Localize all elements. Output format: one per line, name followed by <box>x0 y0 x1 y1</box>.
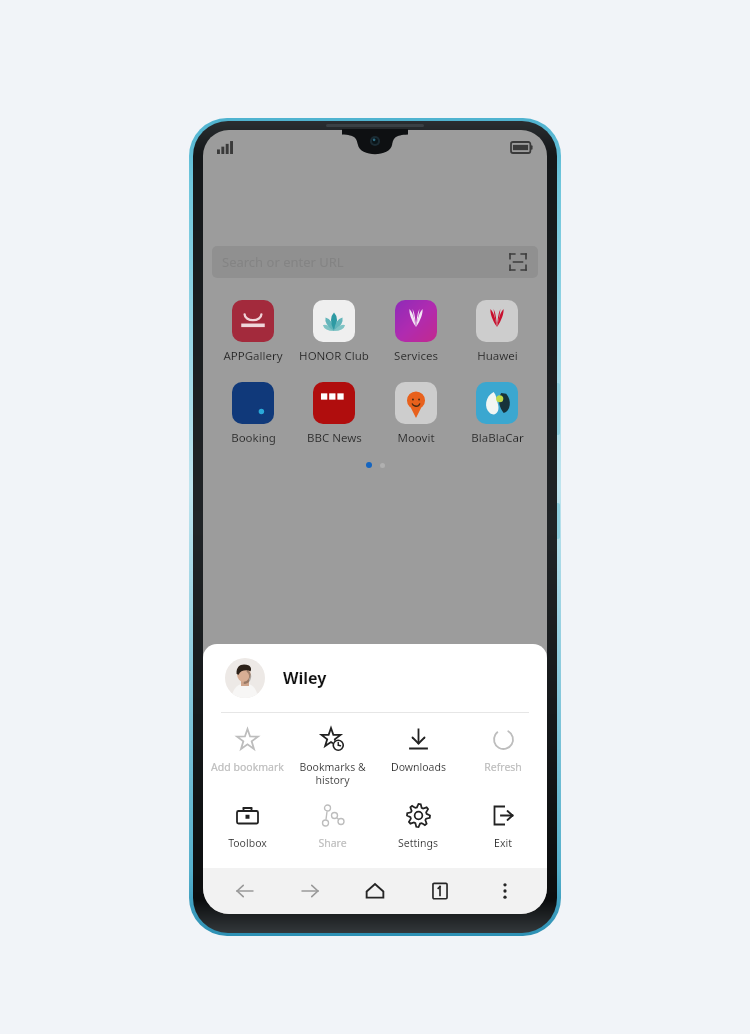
button[interactable]: Add bookmark <box>206 725 288 776</box>
staticText: APPGallery <box>223 348 283 364</box>
button[interactable]: More options <box>482 871 528 911</box>
button[interactable]: Tabs <box>417 871 463 911</box>
staticText: Exit <box>494 836 512 850</box>
button[interactable]: HONOR Club <box>296 300 372 364</box>
button[interactable]: Refresh <box>462 725 544 776</box>
staticText: Search or enter URL <box>222 253 344 271</box>
staticText: Bookmarks & history <box>299 760 366 787</box>
staticText: BlaBlaCar <box>471 430 524 446</box>
button[interactable]: Bookmarks & history <box>291 725 373 789</box>
button[interactable]: BBC News <box>296 382 372 446</box>
button[interactable]: Scan QR code <box>508 252 528 272</box>
staticText: HONOR Club <box>299 348 369 364</box>
staticText: Share <box>318 836 347 850</box>
button[interactable]: Booking <box>215 382 291 446</box>
button[interactable]: BlaBlaCar <box>459 382 535 446</box>
button[interactable]: Downloads <box>377 725 459 776</box>
button[interactable]: APPGallery <box>215 300 291 364</box>
button[interactable]: Search or enter URL <box>212 246 538 278</box>
staticText: BBC News <box>307 430 362 446</box>
button[interactable]: Back <box>222 871 268 911</box>
button[interactable]: Huawei <box>459 300 535 364</box>
staticText: Downloads <box>391 760 446 774</box>
button[interactable]: Share <box>291 801 373 852</box>
staticText: Moovit <box>397 430 435 446</box>
staticText: Wiley <box>283 667 327 689</box>
staticText: Toolbox <box>228 836 267 850</box>
button[interactable]: Wiley <box>203 644 547 712</box>
button[interactable]: Toolbox <box>206 801 288 852</box>
staticText: Add bookmark <box>211 760 284 774</box>
button[interactable]: Moovit <box>378 382 454 446</box>
button[interactable]: Exit <box>462 801 544 852</box>
staticText: Settings <box>398 836 438 850</box>
staticText: Booking <box>231 430 276 446</box>
button[interactable]: Services <box>378 300 454 364</box>
staticText: Refresh <box>484 760 522 774</box>
button[interactable]: Forward <box>287 871 333 911</box>
staticText: Services <box>394 348 438 364</box>
button[interactable]: Home <box>352 871 398 911</box>
button[interactable]: Settings <box>377 801 459 852</box>
staticText: Huawei <box>477 348 518 364</box>
